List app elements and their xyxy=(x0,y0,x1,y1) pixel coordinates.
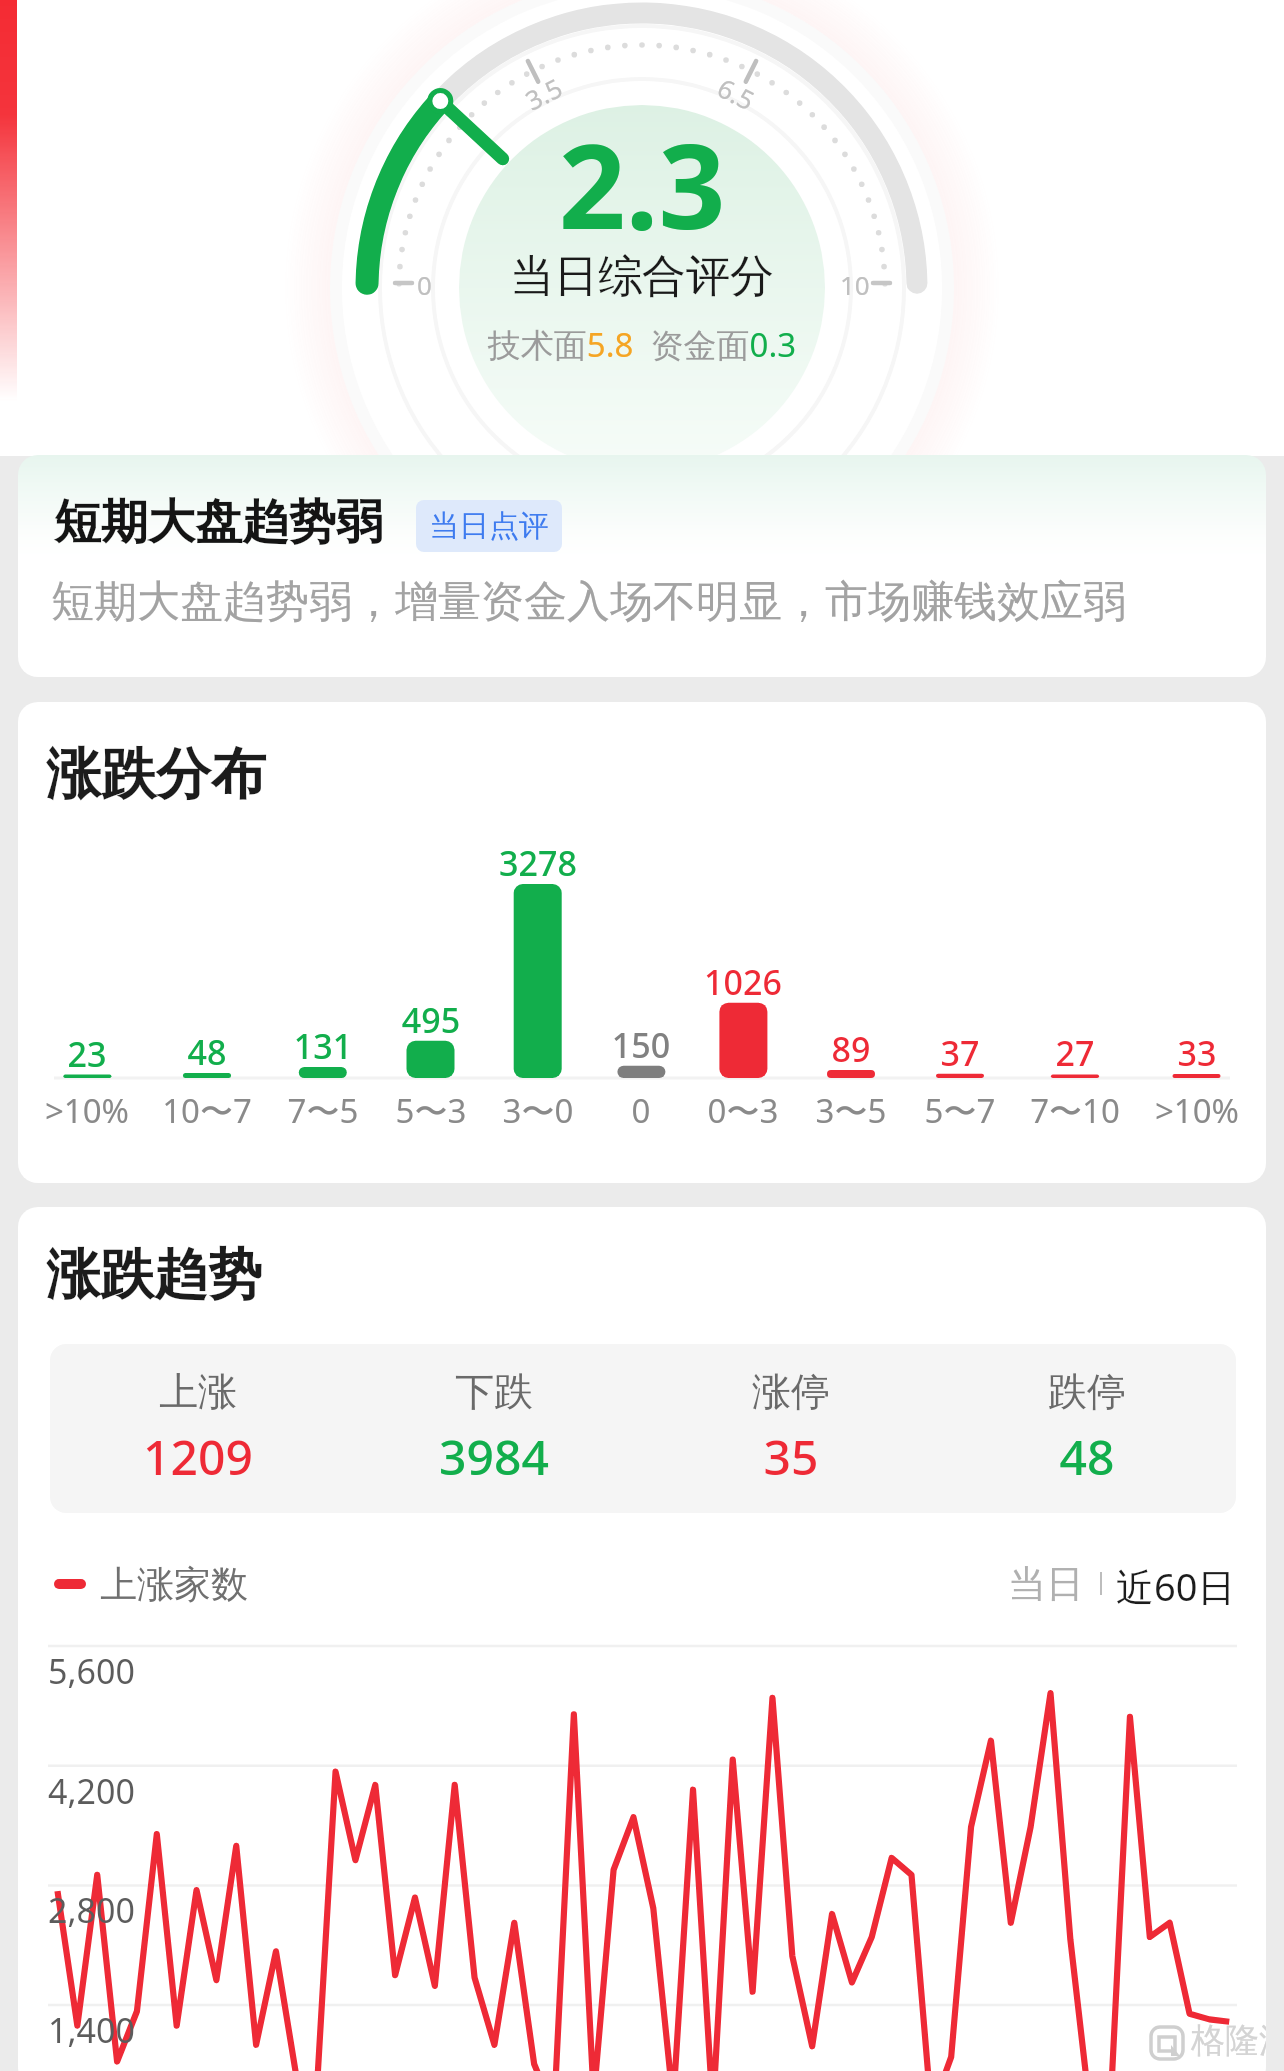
staticText: 0 xyxy=(521,1088,761,1133)
staticText: 35 xyxy=(671,1424,911,1489)
staticText: 短期大盘趋势弱 xyxy=(54,493,383,552)
button[interactable] xyxy=(939,1344,1235,1513)
staticText: 5〜7 xyxy=(840,1088,1080,1133)
staticText: 27 xyxy=(955,1030,1195,1076)
staticText: 37 xyxy=(840,1030,1080,1076)
staticText: 上涨 xyxy=(78,1367,318,1416)
staticText: 10〜7 xyxy=(87,1088,327,1133)
staticText: 当日综合评分 xyxy=(0,249,1284,304)
staticText: 48 xyxy=(87,1029,327,1075)
staticText: 3〜0 xyxy=(418,1088,658,1133)
staticText: 下跌 xyxy=(374,1367,614,1416)
staticText: 涨跌分布 xyxy=(46,740,266,809)
staticText: 3.5 xyxy=(519,69,568,117)
staticText: 格隆汇 xyxy=(1191,2019,1266,2062)
staticText: 短期大盘趋势弱，增量资金入场不明显，市场赚钱效应弱 xyxy=(51,575,1126,629)
staticText: 涨停 xyxy=(671,1367,911,1416)
button[interactable] xyxy=(50,1344,346,1513)
staticText: 5,600 xyxy=(48,1648,135,1694)
staticText: 上涨家数 xyxy=(100,1561,248,1608)
staticText: 1026 xyxy=(623,959,863,1005)
staticText: 23 xyxy=(18,1031,207,1077)
staticText: 技术面5.8 资金面0.3 xyxy=(0,322,1284,367)
button[interactable]: 当日综合评分 2.3 xyxy=(0,0,1284,456)
staticText: 近60日 xyxy=(1116,1560,1236,1612)
staticText: 3984 xyxy=(374,1424,614,1489)
button[interactable] xyxy=(643,1344,939,1513)
staticText: 涨跌趋势 xyxy=(46,1241,262,1309)
staticText: 10 xyxy=(840,267,870,302)
staticText: 2.3 xyxy=(0,104,1284,263)
staticText: 33 xyxy=(1077,1030,1266,1076)
button[interactable] xyxy=(346,1344,642,1513)
button[interactable] xyxy=(1004,1553,1096,1603)
staticText: 3〜5 xyxy=(731,1088,971,1133)
staticText: 当日 xyxy=(1008,1560,1084,1608)
staticText: 89 xyxy=(731,1026,971,1072)
staticText: 1209 xyxy=(78,1424,318,1489)
staticText: 2,800 xyxy=(48,1887,135,1933)
staticText: 495 xyxy=(311,997,551,1043)
staticText: 6.5 xyxy=(712,69,761,117)
button[interactable]: 当日点评 xyxy=(416,500,562,552)
staticText: 150 xyxy=(521,1022,761,1068)
button[interactable]: 涨跌分布 xyxy=(18,702,1266,1183)
staticText: 0〜3 xyxy=(623,1088,863,1133)
staticText: 4,200 xyxy=(48,1768,135,1814)
staticText: >10% xyxy=(1077,1088,1266,1133)
staticText: 131 xyxy=(203,1023,443,1069)
button[interactable]: 涨跌趋势 xyxy=(18,1207,1266,2071)
staticText: 5〜3 xyxy=(311,1088,551,1133)
staticText: 7〜5 xyxy=(203,1088,443,1133)
staticText: 当日点评 xyxy=(429,507,549,545)
button[interactable] xyxy=(1111,1553,1241,1603)
staticText: 跌停 xyxy=(967,1367,1207,1416)
staticText: 1,400 xyxy=(48,2007,135,2053)
staticText: 0 xyxy=(417,267,432,302)
staticText: 3278 xyxy=(418,840,658,886)
staticText: 7〜10 xyxy=(955,1088,1195,1133)
staticText: 48 xyxy=(967,1424,1207,1489)
button[interactable]: 短期大盘趋势弱 xyxy=(18,455,1266,677)
staticText: >10% xyxy=(18,1088,207,1133)
